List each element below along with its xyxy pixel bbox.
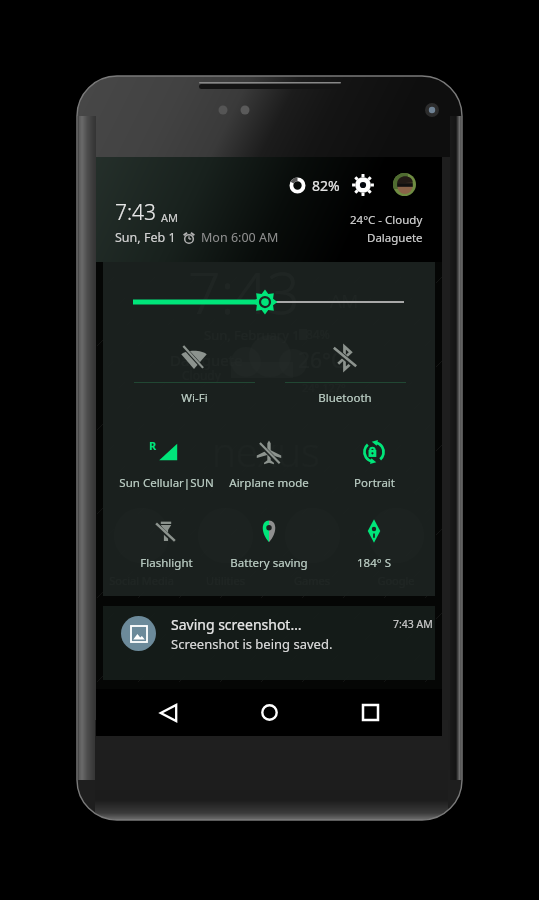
staticText: Battery saving [230,555,308,571]
staticText: 7:43 [188,253,300,331]
staticText: 24°C - Cloudy [350,212,423,228]
button[interactable]: Battery saving [213,512,325,568]
button[interactable]: R [110,433,222,489]
button[interactable]: Home [243,689,295,736]
staticText: AM [330,288,359,314]
staticText: Dalaguete [367,230,423,246]
button[interactable]: Back [143,689,195,736]
button[interactable]: 184° S [318,512,430,568]
button[interactable]: Airplane mode [213,433,325,489]
staticText: Mon 6:00 AM [201,229,279,246]
staticText: Wi-Fi [181,390,208,406]
staticText: Dalaguete [170,350,243,370]
button[interactable]: Saving screenshot… [103,606,435,680]
staticText: 7:43 [115,198,157,227]
staticText: Sun Cellular|SUN [119,475,214,491]
staticText: Saving screenshot… [171,615,302,634]
button[interactable]: Settings [350,172,376,198]
button[interactable]: Wi-Fi [116,339,272,401]
staticText: Screenshot is being saved. [171,635,333,653]
button[interactable]: Bluetooth [267,339,423,401]
staticText: Bluetooth [318,390,372,406]
staticText: 24° 127° [302,380,346,395]
staticText: 26°C [298,346,345,375]
button[interactable]: Portrait [318,433,430,489]
staticText: 184° S [357,555,391,571]
staticText: Sun, Feb 1 [115,229,176,246]
button[interactable]: User profile [393,173,416,196]
button[interactable]: Recents [344,689,396,736]
button[interactable]: Flashlight [110,512,222,568]
staticText: 7:43 AM [393,617,433,631]
staticText: AM [161,210,179,225]
staticText: Portrait [354,475,395,491]
staticText: R [149,438,157,453]
staticText: Cloudy [182,367,221,383]
staticText: Flashlight [140,555,193,571]
staticText: nexus [212,424,320,478]
staticText: Airplane mode [229,475,309,491]
staticText: 82% [312,176,340,195]
